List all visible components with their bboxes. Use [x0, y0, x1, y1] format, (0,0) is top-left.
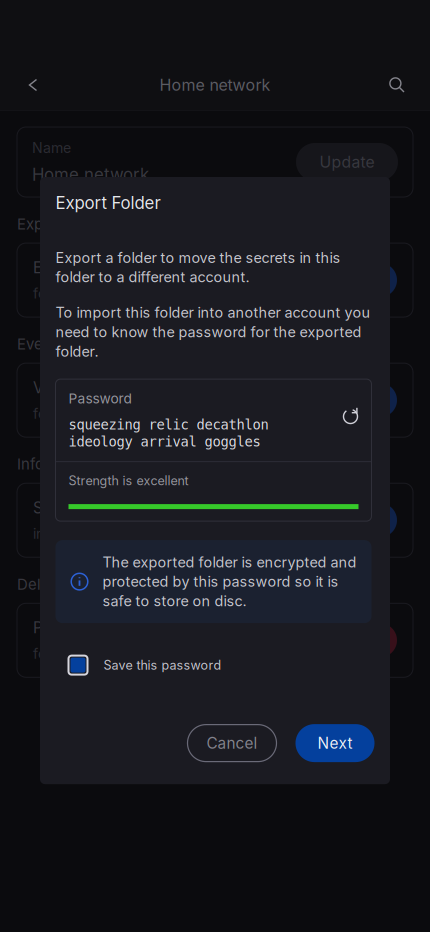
staticText: Show folder	[33, 498, 120, 517]
button[interactable]: Show folder	[17, 483, 413, 557]
staticText: The exported folder is encrypted and pro…	[102, 553, 356, 610]
button[interactable]: Permanently	[17, 603, 413, 677]
staticText: Delete	[17, 575, 64, 593]
staticText: Password	[68, 390, 131, 407]
staticText: Save this password	[103, 657, 221, 673]
staticText: squeezing relic decathlon	[68, 417, 268, 433]
staticText: Export Folder	[55, 193, 160, 213]
staticText: Export	[17, 215, 63, 233]
staticText: View recent	[33, 378, 121, 397]
staticText: folder events	[33, 405, 118, 422]
staticText: Export this	[33, 258, 109, 277]
button[interactable]: Cancel	[187, 725, 276, 762]
button[interactable]: Export this	[17, 243, 413, 317]
staticText: folder	[33, 645, 71, 662]
button[interactable]: Next	[295, 724, 374, 762]
staticText: folder	[33, 285, 71, 302]
button[interactable]: Search	[377, 63, 417, 107]
button[interactable]: Regenerate password	[342, 387, 359, 425]
staticText: information	[33, 525, 107, 542]
staticText: Home network	[159, 75, 270, 95]
button[interactable]: View recent	[17, 363, 413, 437]
staticText: Events	[17, 335, 65, 353]
staticText: Home network	[32, 164, 149, 185]
staticText: Cancel	[206, 734, 257, 752]
staticText: Next	[317, 734, 352, 752]
staticText: Strength is excellent	[68, 473, 188, 488]
staticText: ideology arrival goggles	[68, 434, 260, 450]
staticText: Permanently	[33, 618, 126, 637]
staticText: Info	[17, 455, 44, 473]
button[interactable]: Back	[13, 63, 53, 107]
button[interactable]: Save this password	[55, 645, 371, 685]
staticText: Update	[319, 152, 374, 171]
staticText: To import this folder into another accou…	[55, 304, 370, 360]
staticText: Name	[32, 139, 71, 156]
staticText: Export a folder to move the secrets in t…	[55, 249, 340, 286]
